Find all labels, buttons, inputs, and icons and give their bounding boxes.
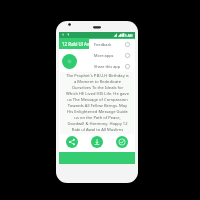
button[interactable]: Download — [91, 136, 103, 148]
staticText: 12 Rabi Ul Awal — [62, 41, 95, 47]
button[interactable]: More apps — [89, 50, 135, 61]
button[interactable]: Calendar — [62, 54, 77, 69]
button[interactable]: 12 Rabi Ul Awal — [59, 38, 135, 49]
button[interactable]: Feedback — [89, 39, 135, 50]
button[interactable]: Done — [116, 136, 128, 148]
staticText: The Prophet's P.B.U.H Birthday is a Mome… — [66, 73, 129, 133]
staticText: Feedback — [94, 42, 125, 47]
button[interactable]: Share this app — [89, 61, 135, 72]
staticText: Share this app — [94, 64, 125, 69]
staticText: 9:15 AM — [120, 33, 133, 37]
button[interactable]: Share — [66, 136, 78, 148]
staticText: More apps — [94, 53, 125, 58]
